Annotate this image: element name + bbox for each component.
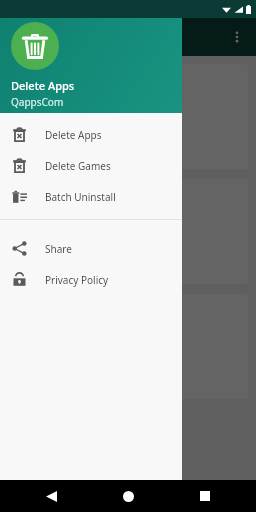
button[interactable]: Share bbox=[0, 233, 182, 264]
staticText: Delete apps one by one bbox=[18, 141, 118, 153]
staticText: Delete Apps bbox=[45, 128, 102, 142]
button[interactable]: Back bbox=[38, 483, 64, 509]
button[interactable]: Privacy Policy bbox=[0, 264, 182, 295]
button[interactable]: Batch Uninstall bbox=[0, 181, 182, 212]
button[interactable]: Delete games one by one bbox=[8, 179, 248, 284]
button[interactable]: Uninstall apps by selection bbox=[8, 294, 248, 399]
staticText: Share bbox=[45, 242, 72, 256]
button[interactable]: Home bbox=[115, 483, 141, 509]
button[interactable]: Delete Apps bbox=[0, 119, 182, 150]
button[interactable]: Delete Games bbox=[0, 150, 182, 181]
staticText: Delete Games bbox=[45, 159, 111, 173]
button[interactable]: Delete apps one by one bbox=[8, 64, 248, 169]
staticText: Delete Apps bbox=[11, 78, 75, 93]
staticText: QappsCom bbox=[11, 95, 64, 109]
button[interactable]: Recent apps bbox=[192, 483, 218, 509]
staticText: Batch Uninstall bbox=[45, 190, 116, 204]
staticText: Privacy Policy bbox=[45, 273, 109, 287]
button[interactable]: More options bbox=[224, 24, 250, 50]
